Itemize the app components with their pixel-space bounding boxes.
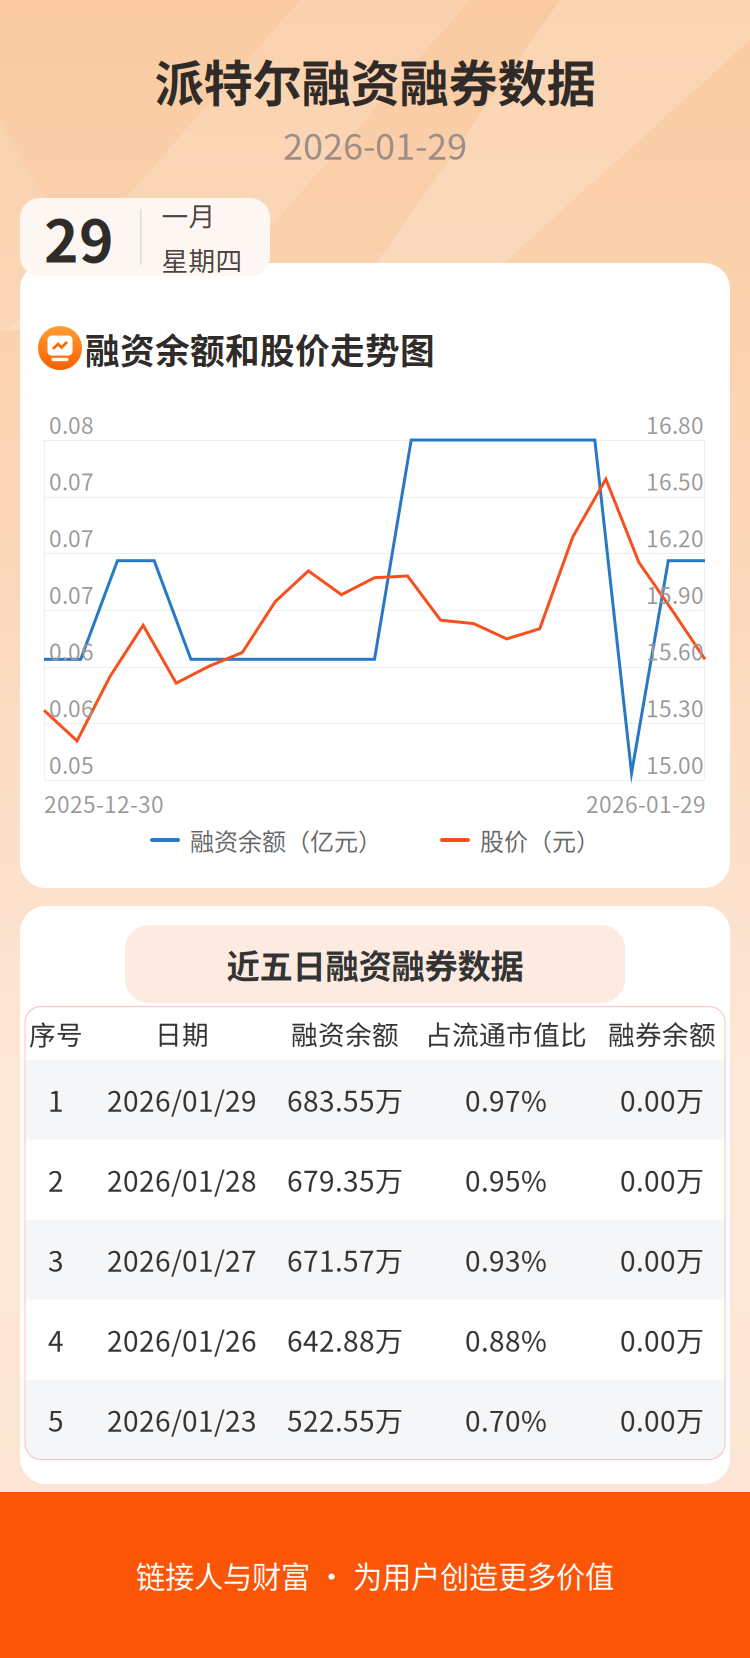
staticText: 0.08	[49, 408, 94, 440]
staticText: 2026/01/27	[107, 1239, 257, 1280]
staticText: 占流通市值比	[425, 1014, 587, 1052]
staticText: 16.50	[646, 464, 704, 497]
staticText: 5	[48, 1399, 64, 1440]
staticText: 2	[48, 1159, 64, 1200]
staticText: 一月	[161, 195, 215, 234]
staticText: 0.06	[49, 691, 94, 724]
staticText: 0.93%	[465, 1239, 547, 1280]
staticText: 2025-12-30	[44, 787, 164, 819]
staticText: 0.07	[49, 578, 94, 610]
staticText: 15.60	[646, 634, 704, 667]
staticText: 29	[44, 194, 114, 279]
staticText: 0.00万	[620, 1399, 704, 1440]
staticText: 链接人与财富 · 为用户创造更多价值	[136, 1554, 614, 1596]
staticText: 融资余额	[291, 1014, 399, 1052]
staticText: 2026/01/29	[107, 1079, 257, 1120]
staticText: 序号	[29, 1014, 83, 1052]
staticText: 671.57万	[287, 1239, 403, 1280]
staticText: 2026-01-29	[283, 118, 467, 170]
staticText: 522.55万	[287, 1399, 403, 1440]
staticText: 642.88万	[287, 1319, 403, 1360]
staticText: 0.00万	[620, 1239, 704, 1280]
staticText: 3	[48, 1239, 64, 1280]
staticText: 0.06	[49, 634, 94, 667]
staticText: 近五日融资融券数据	[226, 940, 523, 988]
staticText: 2026-01-29	[586, 787, 706, 819]
staticText: 0.05	[49, 748, 94, 780]
staticText: 融券余额	[608, 1014, 716, 1052]
staticText: 日期	[155, 1014, 209, 1052]
staticText: 0.00万	[620, 1079, 704, 1120]
staticText: 融资余额（亿元）	[190, 823, 382, 857]
staticText: 679.35万	[287, 1159, 403, 1200]
staticText: 0.00万	[620, 1319, 704, 1360]
staticText: 0.00万	[620, 1159, 704, 1200]
staticText: 16.20	[646, 521, 704, 554]
staticText: 0.88%	[465, 1319, 547, 1360]
staticText: 融资余额和股价走势图	[85, 324, 435, 374]
staticText: 0.07	[49, 464, 94, 497]
staticText: 2026/01/28	[107, 1159, 257, 1200]
staticText: 0.95%	[465, 1159, 547, 1200]
staticText: 16.80	[646, 408, 704, 440]
staticText: 0.70%	[465, 1399, 547, 1440]
staticText: 15.90	[646, 578, 704, 610]
staticText: 15.00	[646, 748, 704, 780]
staticText: 683.55万	[287, 1079, 403, 1120]
staticText: 4	[48, 1319, 64, 1360]
staticText: 15.30	[646, 691, 704, 724]
staticText: 2026/01/26	[107, 1319, 257, 1360]
staticText: 派特尔融资融券数据	[154, 44, 595, 116]
staticText: 0.07	[49, 521, 94, 554]
staticText: 2026/01/23	[107, 1399, 257, 1440]
staticText: 星期四	[161, 240, 242, 279]
staticText: 1	[48, 1079, 64, 1120]
staticText: 0.97%	[465, 1079, 547, 1120]
staticText: 股价（元）	[480, 823, 600, 857]
